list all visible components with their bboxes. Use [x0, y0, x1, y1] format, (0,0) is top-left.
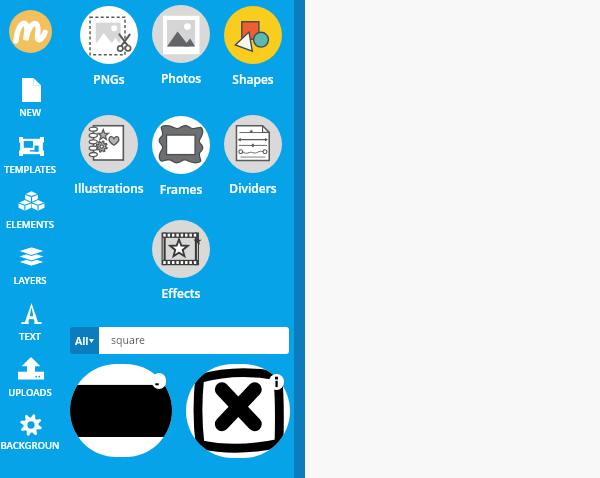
staticText: All — [75, 333, 89, 348]
button[interactable]: square — [99, 327, 289, 354]
button[interactable]: TEXT — [0, 295, 62, 347]
staticText: TEMPLATES — [0, 163, 61, 176]
staticText: square — [111, 333, 145, 347]
staticText: Effects — [132, 285, 230, 301]
button[interactable]: All — [70, 327, 99, 354]
staticText: Shapes — [204, 71, 302, 87]
staticText: Frames — [132, 181, 230, 197]
staticText: UPLOADS — [0, 386, 61, 399]
button[interactable]: ELEMENTS — [0, 183, 62, 235]
button[interactable]: PNGs — [60, 6, 158, 90]
staticText: Illustrations — [60, 180, 158, 196]
button[interactable]: Info — [269, 374, 284, 390]
staticText: LAYERS — [0, 274, 61, 287]
button[interactable]: Photos — [132, 5, 230, 89]
button[interactable]: LAYERS — [0, 238, 62, 291]
staticText: PNGs — [60, 71, 158, 87]
staticText: Dividers — [204, 180, 302, 196]
button[interactable]: Illustrations — [60, 115, 158, 199]
button[interactable]: UPLOADS — [0, 349, 62, 403]
button[interactable]: Search result 2 — [186, 364, 290, 458]
staticText: ELEMENTS — [0, 218, 61, 231]
staticText: TEXT — [0, 330, 61, 343]
button[interactable]: Home — [9, 10, 52, 53]
button[interactable]: Search result 1 — [70, 364, 172, 457]
button[interactable]: Shapes — [204, 6, 302, 90]
button[interactable]: Dividers — [204, 115, 302, 199]
staticText: BACKGROUND — [0, 439, 61, 452]
staticText: Photos — [132, 70, 230, 86]
button[interactable]: TEMPLATES — [0, 129, 62, 180]
button[interactable]: Effects — [132, 220, 230, 304]
staticText: NEW — [0, 106, 61, 119]
button[interactable]: NEW — [0, 70, 62, 123]
button[interactable]: BACKGROUND — [0, 406, 62, 456]
button[interactable]: Frames — [132, 116, 230, 200]
button[interactable]: Info — [152, 373, 166, 389]
